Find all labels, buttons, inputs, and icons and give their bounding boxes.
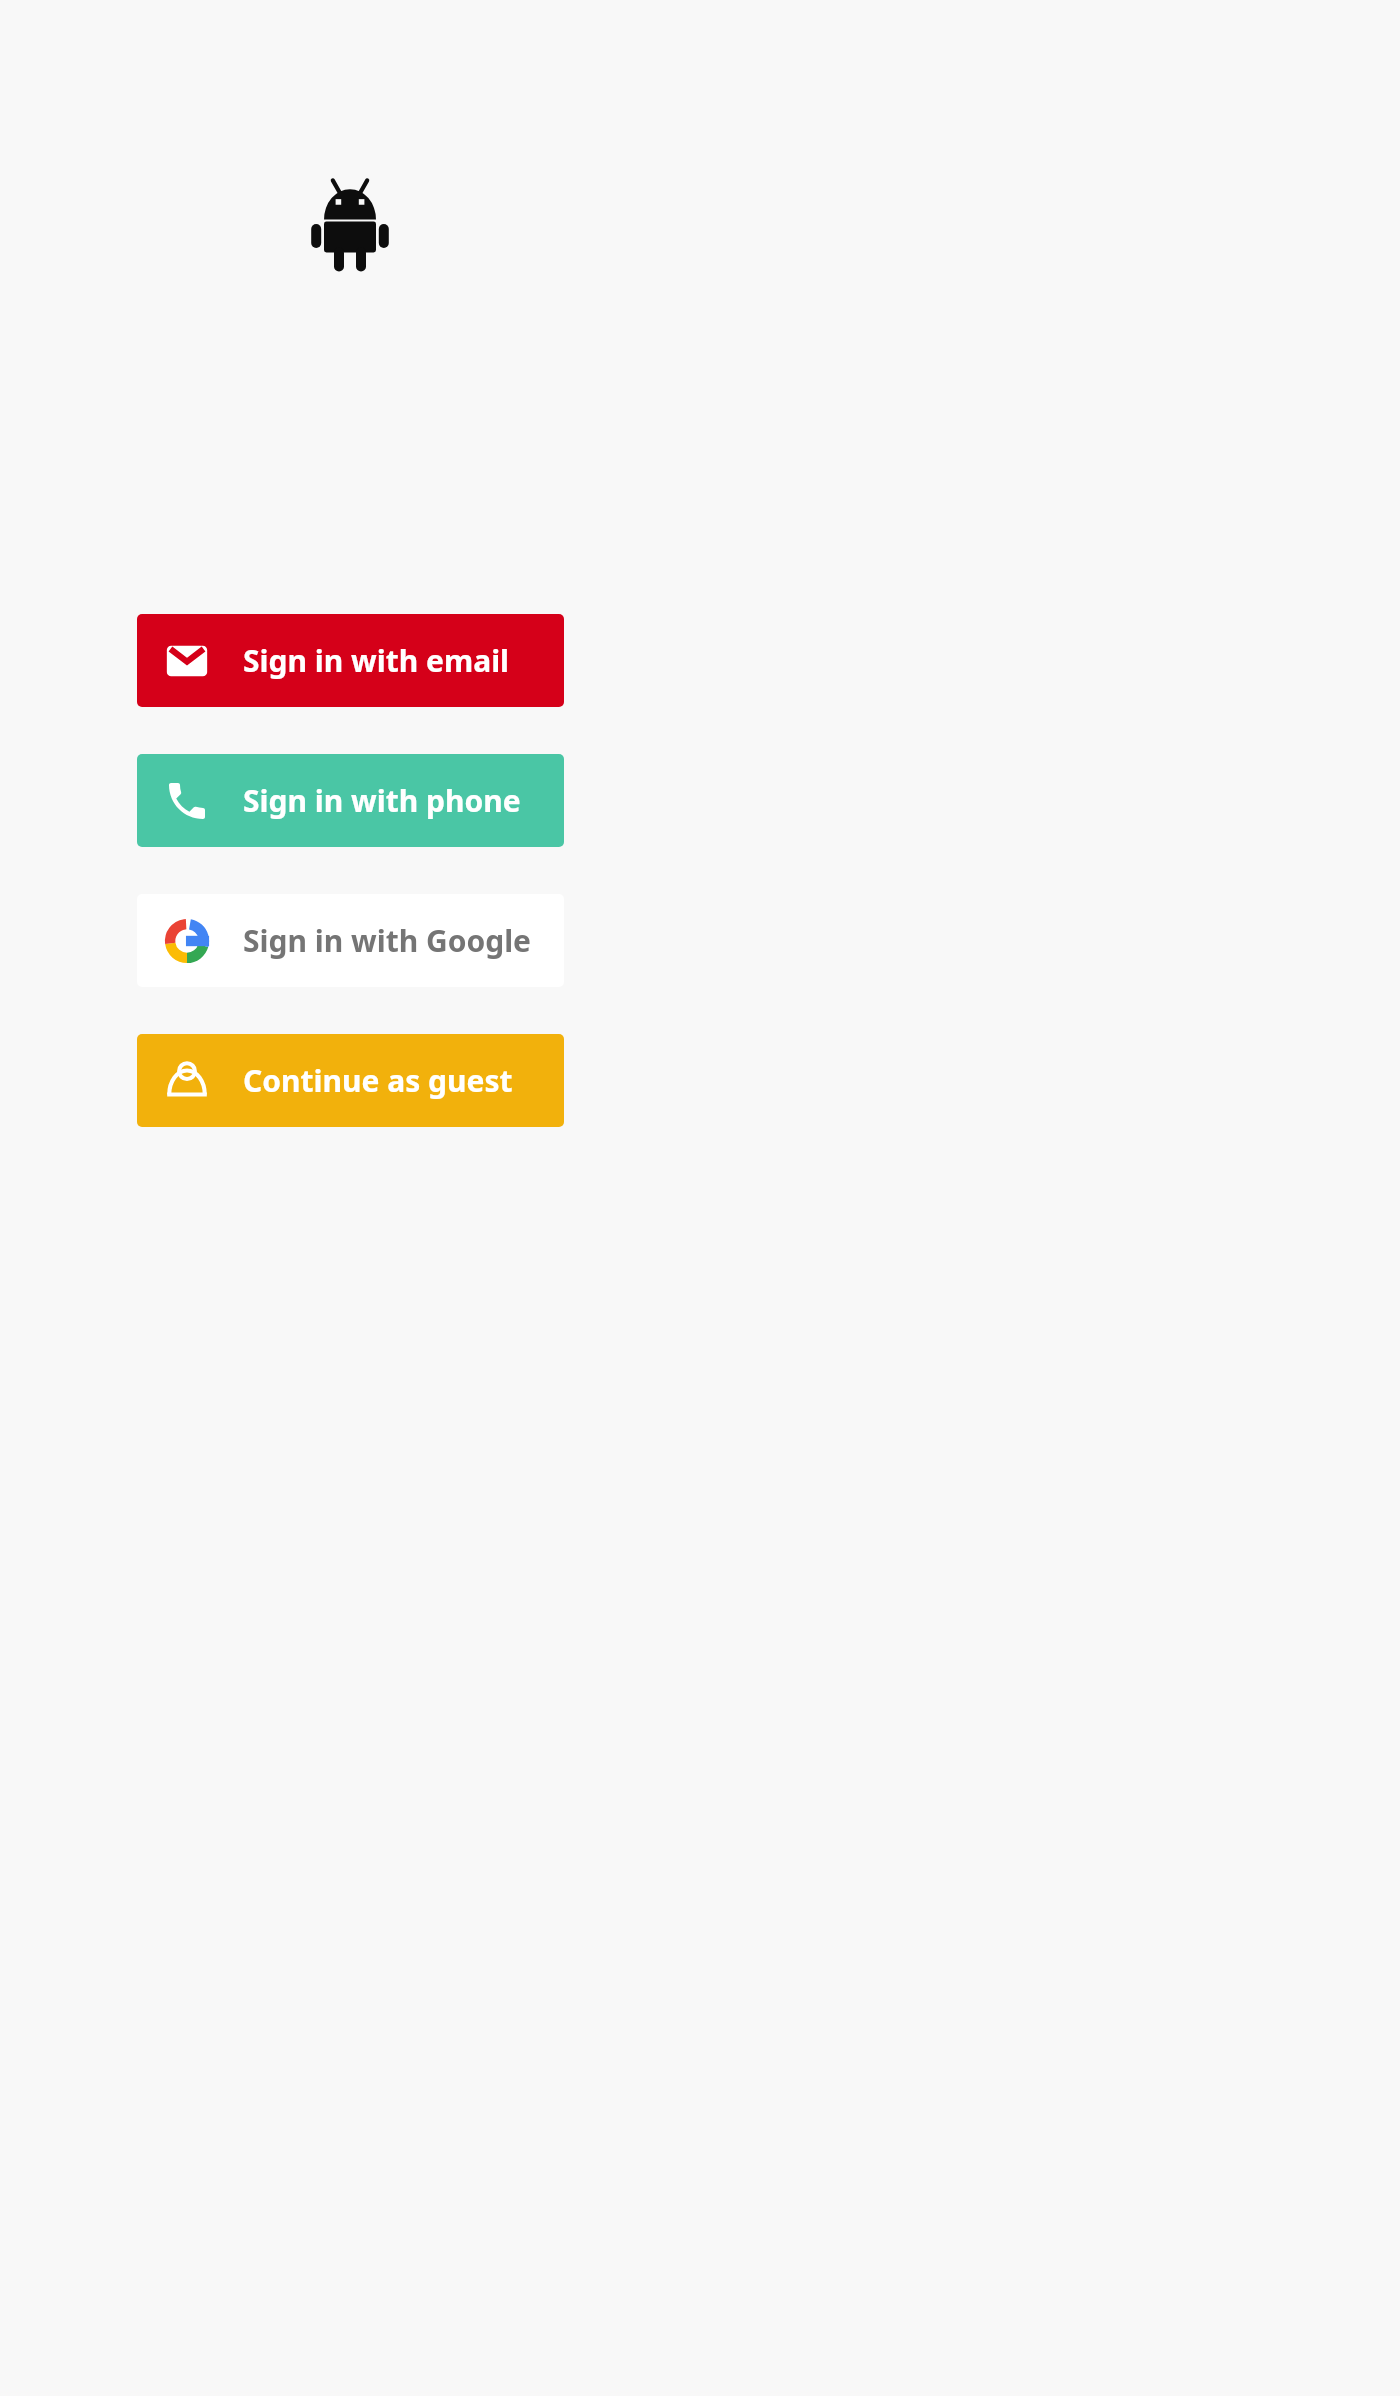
button[interactable]: Sign in with email [137, 614, 564, 707]
other: Email [163, 637, 211, 685]
other: Phone [163, 777, 211, 825]
other: Google [163, 917, 211, 965]
button[interactable]: Sign in with phone [137, 754, 564, 847]
button[interactable]: Continue as guest [137, 1034, 564, 1127]
staticText: Sign in with phone [243, 780, 521, 821]
staticText: Continue as guest [243, 1060, 513, 1101]
staticText: Sign in with Google [243, 920, 532, 961]
staticText: Sign in with email [243, 640, 510, 681]
button[interactable]: Sign in with Google [137, 894, 564, 987]
other: Guest [163, 1057, 211, 1105]
